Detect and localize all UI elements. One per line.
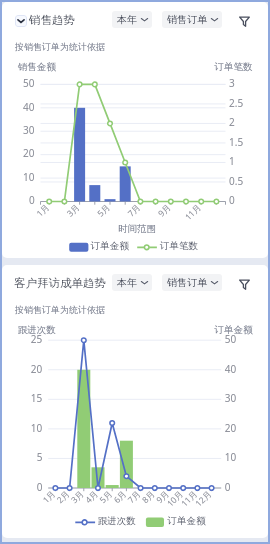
staticText: 客户拜访成单趋势 <box>14 276 106 290</box>
button[interactable]: Filter <box>235 275 253 293</box>
staticText: 本年 <box>117 13 137 26</box>
button[interactable]: Filter <box>235 12 253 30</box>
button[interactable]: 销售订单 <box>162 274 222 291</box>
button[interactable]: 本年 <box>112 11 152 28</box>
button[interactable]: Collapse section <box>15 15 27 27</box>
staticText: 销售订单 <box>167 276 207 289</box>
staticText: 销售趋势 <box>29 13 75 27</box>
staticText: 按销售订单为统计依据 <box>15 41 105 52</box>
button[interactable]: 本年 <box>112 274 152 291</box>
staticText: 按销售订单为统计依据 <box>15 304 105 315</box>
button[interactable]: 销售订单 <box>162 11 222 28</box>
staticText: 本年 <box>117 276 137 289</box>
staticText: 销售订单 <box>167 13 207 26</box>
